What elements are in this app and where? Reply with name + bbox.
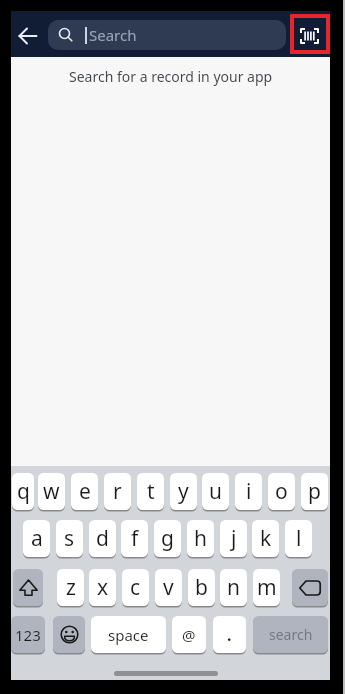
staticText: e <box>79 477 91 506</box>
button[interactable] <box>290 14 330 54</box>
staticText: q <box>17 477 30 506</box>
staticText: h <box>194 524 207 553</box>
button[interactable]: a <box>23 520 50 557</box>
staticText: r <box>113 477 122 506</box>
button[interactable]: x <box>89 569 116 606</box>
button[interactable]: t <box>137 473 164 510</box>
staticText: a <box>31 524 43 553</box>
button[interactable] <box>292 569 328 606</box>
button[interactable]: d <box>89 520 116 557</box>
button[interactable]: j <box>220 520 247 557</box>
staticText: m <box>257 573 277 602</box>
staticText: z <box>66 573 76 602</box>
button[interactable]: b <box>188 569 215 606</box>
button[interactable]: f <box>121 520 148 557</box>
staticText: y <box>178 477 189 506</box>
button[interactable]: g <box>154 520 181 557</box>
button[interactable] <box>13 569 43 606</box>
staticText: w <box>43 477 60 506</box>
button[interactable]: q <box>12 473 34 510</box>
button[interactable]: i <box>235 473 262 510</box>
button[interactable]: p <box>301 473 328 510</box>
staticText: c <box>130 573 141 602</box>
staticText: x <box>97 573 109 602</box>
button[interactable]: v <box>155 569 182 606</box>
staticText: f <box>131 524 139 553</box>
staticText: Search for a record in your app <box>69 67 273 86</box>
staticText: p <box>308 477 321 506</box>
button[interactable]: m <box>253 569 280 606</box>
button[interactable]: s <box>56 520 83 557</box>
staticText: t <box>147 477 155 506</box>
staticText: i <box>246 477 252 506</box>
button[interactable]: search <box>253 616 328 653</box>
staticText: k <box>260 524 272 553</box>
staticText: Search <box>89 25 137 45</box>
button[interactable]: r <box>104 473 131 510</box>
button[interactable]: l <box>285 520 312 557</box>
button[interactable]: Search <box>48 20 286 50</box>
button[interactable]: . <box>213 616 246 653</box>
button[interactable]: k <box>252 520 279 557</box>
button[interactable]: e <box>71 473 98 510</box>
staticText: g <box>161 524 174 553</box>
staticText: . <box>227 624 232 646</box>
staticText: j <box>231 524 237 553</box>
staticText: d <box>96 524 109 553</box>
staticText: u <box>209 477 222 506</box>
button[interactable]: @ <box>172 616 206 653</box>
button[interactable]: n <box>220 569 247 606</box>
button[interactable]: y <box>170 473 197 510</box>
staticText: 123 <box>15 625 41 645</box>
button[interactable]: w <box>38 473 65 510</box>
staticText: b <box>195 573 208 602</box>
button[interactable]: 123 <box>11 616 45 653</box>
staticText: v <box>163 573 174 602</box>
button[interactable]: z <box>57 569 84 606</box>
staticText: s <box>64 524 75 553</box>
button[interactable]: c <box>122 569 149 606</box>
button[interactable]: o <box>268 473 295 510</box>
staticText: n <box>227 573 240 602</box>
button[interactable]: space <box>91 616 166 653</box>
button[interactable] <box>14 23 42 48</box>
staticText: o <box>275 477 288 506</box>
button[interactable]: u <box>202 473 229 510</box>
staticText: space <box>108 625 149 645</box>
button[interactable]: h <box>187 520 214 557</box>
button[interactable] <box>53 616 85 653</box>
staticText: @ <box>182 625 196 645</box>
staticText: l <box>296 524 302 553</box>
staticText: search <box>269 625 313 644</box>
